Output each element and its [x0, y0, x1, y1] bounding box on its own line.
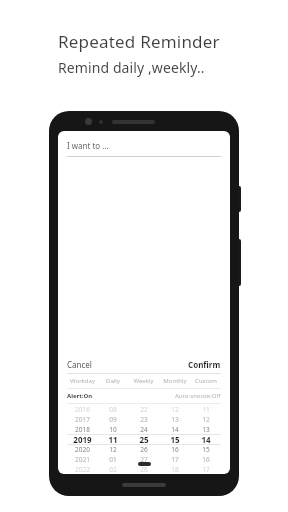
button[interactable]: I want to ... — [58, 131, 230, 157]
staticText: I want to ... — [67, 140, 109, 151]
staticText: 14 — [201, 434, 211, 444]
staticText: 01 — [109, 455, 117, 464]
staticText: 23 — [140, 415, 148, 424]
staticText: Remind daily ,weekly.. — [58, 58, 205, 77]
staticText: 15 — [170, 434, 180, 444]
staticText: 24 — [140, 425, 148, 434]
staticText: 18 — [171, 465, 179, 474]
staticText: 27 — [140, 455, 148, 464]
staticText: 15 — [202, 445, 210, 454]
staticText: 09 — [109, 415, 117, 424]
staticText: 2020 — [75, 445, 90, 454]
button[interactable]: Alert:On — [67, 392, 93, 400]
staticText: Daily — [106, 377, 120, 385]
button[interactable]: Cancel — [67, 356, 92, 373]
staticText: 02 — [109, 465, 117, 474]
staticText: 12 — [109, 445, 117, 454]
staticText: 17 — [202, 465, 210, 474]
staticText: 2017 — [75, 415, 90, 424]
staticText: Monthly — [163, 377, 187, 385]
staticText: 2022 — [75, 465, 90, 474]
staticText: 2019 — [73, 434, 92, 444]
staticText: 16 — [171, 445, 179, 454]
staticText: 13 — [202, 425, 210, 434]
other: Scroll indicator — [138, 462, 151, 466]
button[interactable]: Monthly — [159, 377, 190, 385]
staticText: 2016 — [75, 405, 90, 414]
staticText: 12 — [171, 405, 179, 414]
button[interactable]: Workday — [67, 377, 97, 385]
staticText: 25 — [139, 434, 149, 444]
staticText: 2021 — [75, 455, 90, 464]
staticText: 16 — [202, 455, 210, 464]
staticText: Cancel — [67, 359, 92, 370]
button[interactable]: Confirm — [188, 356, 221, 373]
staticText: 10 — [109, 425, 117, 434]
staticText: Confirm — [188, 359, 221, 370]
staticText: 11 — [202, 405, 210, 414]
staticText: 28 — [140, 465, 148, 474]
staticText: Auto-snooze:Off — [175, 392, 221, 400]
button[interactable]: Auto-snooze:Off — [175, 392, 221, 400]
button[interactable]: Custom — [190, 377, 221, 385]
staticText: Custom — [195, 377, 217, 385]
staticText: Weekly — [133, 377, 154, 385]
button[interactable]: Daily — [97, 377, 128, 385]
staticText: 17 — [171, 455, 179, 464]
staticText: 11 — [108, 434, 118, 444]
staticText: Repeated Reminder — [58, 30, 220, 53]
button[interactable]: 2016 — [67, 404, 221, 474]
staticText: 08 — [109, 405, 117, 414]
staticText: 12 — [202, 415, 210, 424]
staticText: 22 — [140, 405, 148, 414]
staticText: 14 — [171, 425, 179, 434]
staticText: Alert:On — [67, 392, 93, 400]
staticText: 13 — [171, 415, 179, 424]
staticText: 26 — [140, 445, 148, 454]
staticText: Workday — [70, 377, 95, 385]
button[interactable]: Weekly — [128, 377, 159, 385]
staticText: 2018 — [75, 425, 90, 434]
